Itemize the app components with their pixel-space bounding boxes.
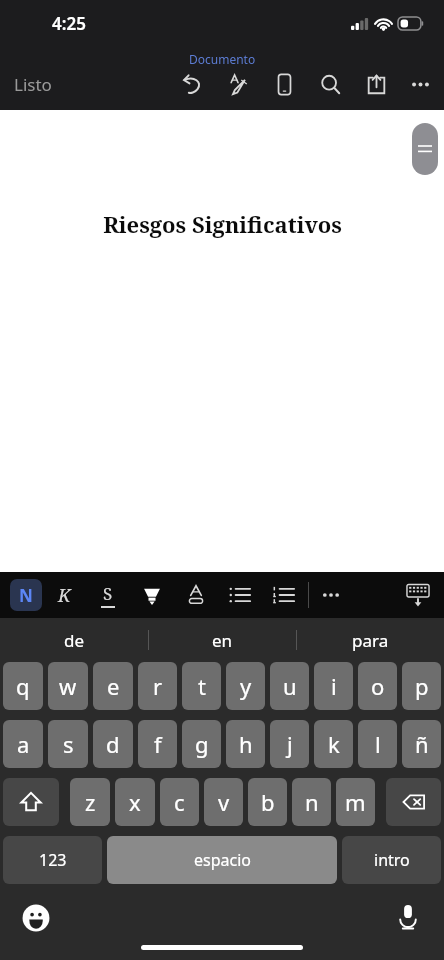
staticText: g (195, 729, 209, 759)
button[interactable]: Phone view (266, 66, 302, 102)
staticText: m (345, 787, 366, 817)
button[interactable]: c (160, 778, 199, 826)
button[interactable]: Search (312, 66, 348, 102)
button[interactable]: Emoji (16, 898, 56, 938)
staticText: h (239, 729, 253, 759)
staticText: N (19, 584, 33, 607)
button[interactable]: Text color (174, 575, 218, 615)
staticText: c (174, 787, 185, 817)
button[interactable]: x (115, 778, 155, 826)
staticText: en (212, 629, 233, 652)
button[interactable]: n (292, 778, 331, 826)
staticText: e (107, 671, 120, 701)
staticText: intro (374, 849, 410, 871)
staticText: para (352, 629, 389, 652)
staticText: espacio (194, 849, 251, 871)
button[interactable]: en (149, 618, 296, 662)
staticText: 123 (39, 849, 67, 871)
button[interactable]: k (314, 720, 353, 768)
staticText: p (415, 671, 429, 701)
staticText: K (58, 583, 71, 608)
staticText: r (153, 671, 163, 701)
button[interactable]: espacio (107, 836, 337, 884)
staticText: z (85, 787, 96, 817)
button[interactable]: f (138, 720, 177, 768)
staticText: x (129, 787, 141, 817)
button[interactable]: a (3, 720, 43, 768)
staticText: i (331, 671, 337, 701)
staticText: n (305, 787, 319, 817)
button[interactable]: t (182, 662, 221, 710)
button[interactable]: p (402, 662, 441, 710)
button[interactable]: intro (342, 836, 441, 884)
staticText: a (17, 729, 30, 759)
button[interactable]: S (86, 575, 130, 615)
button[interactable]: Listo (0, 65, 66, 104)
button[interactable]: 123 (3, 836, 102, 884)
button[interactable]: Bulleted list (218, 575, 262, 615)
staticText: ñ (415, 729, 429, 759)
button[interactable]: Backspace (386, 778, 441, 826)
button[interactable]: Scroll (412, 123, 438, 175)
staticText: j (287, 729, 293, 759)
button[interactable]: Shift (3, 778, 59, 826)
button[interactable]: v (204, 778, 243, 826)
button[interactable]: Dictation (388, 896, 428, 936)
button[interactable]: q (3, 662, 43, 710)
button[interactable]: z (70, 778, 110, 826)
staticText: y (240, 671, 252, 701)
button[interactable]: r (138, 662, 177, 710)
button[interactable]: u (270, 662, 309, 710)
button[interactable]: Hide keyboard (398, 575, 438, 615)
button[interactable]: ñ (402, 720, 441, 768)
button[interactable]: N (10, 579, 42, 611)
button[interactable]: i (314, 662, 353, 710)
button[interactable]: Markup (220, 66, 256, 102)
button[interactable]: More formatting (309, 575, 353, 615)
button[interactable]: o (358, 662, 397, 710)
button[interactable]: m (336, 778, 375, 826)
staticText: Riesgos Significativos (103, 209, 342, 239)
button[interactable]: More (402, 66, 438, 102)
button[interactable]: de (0, 618, 148, 662)
staticText: v (218, 787, 230, 817)
button[interactable]: Undo (174, 66, 210, 102)
button[interactable]: j (270, 720, 309, 768)
staticText: f (154, 729, 162, 759)
button[interactable]: l (358, 720, 397, 768)
staticText: k (328, 729, 340, 759)
button[interactable]: h (226, 720, 265, 768)
staticText: q (16, 671, 30, 701)
button[interactable]: d (93, 720, 133, 768)
button[interactable]: b (248, 778, 287, 826)
button[interactable]: s (48, 720, 88, 768)
staticText: d (106, 729, 120, 759)
button[interactable]: Share (358, 66, 394, 102)
button[interactable]: K (42, 575, 86, 615)
staticText: S (103, 582, 113, 605)
staticText: o (371, 671, 385, 701)
staticText: w (59, 671, 77, 701)
staticText: b (261, 787, 275, 817)
staticText: Listo (14, 73, 52, 96)
staticText: t (198, 671, 206, 701)
button[interactable]: Highlight (130, 575, 174, 615)
staticText: 4:25 (52, 12, 86, 35)
button[interactable]: para (297, 618, 444, 662)
staticText: u (283, 671, 297, 701)
button[interactable]: g (182, 720, 221, 768)
button[interactable]: w (48, 662, 88, 710)
staticText: de (64, 629, 85, 652)
staticText: s (63, 729, 74, 759)
button[interactable]: e (93, 662, 133, 710)
button[interactable]: Numbered list (262, 575, 306, 615)
button[interactable]: y (226, 662, 265, 710)
staticText: l (375, 729, 381, 759)
staticText: Documento (189, 51, 256, 67)
